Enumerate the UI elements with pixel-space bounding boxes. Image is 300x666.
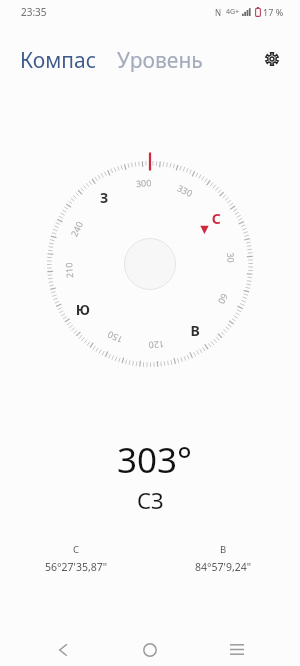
button[interactable]: Компас	[0, 41, 101, 77]
staticText: С	[73, 543, 80, 556]
button[interactable]: Settings	[257, 44, 287, 74]
button[interactable]: Home	[128, 632, 172, 666]
staticText: 23:35	[21, 5, 47, 19]
staticText: Компас	[20, 46, 97, 72]
staticText: 84°57'9,24"	[195, 560, 251, 574]
staticText: 303°	[117, 436, 193, 484]
button[interactable]: Back	[41, 632, 85, 666]
staticText: N	[215, 7, 222, 18]
staticText: 4G+	[226, 7, 240, 17]
staticText: СЗ	[137, 485, 164, 515]
staticText: 56°27'35,87"	[45, 560, 108, 574]
button[interactable]: Recent apps	[215, 632, 259, 666]
staticText: Уровень	[117, 46, 203, 72]
button[interactable]: Уровень	[113, 41, 207, 77]
staticText: 17 %	[263, 6, 284, 18]
staticText: В	[220, 543, 227, 556]
